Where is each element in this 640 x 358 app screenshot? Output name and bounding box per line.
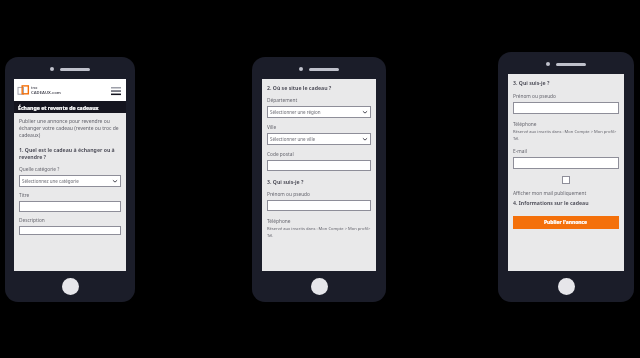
staticText: troc xyxy=(31,86,38,90)
button[interactable]: Home xyxy=(62,278,79,295)
staticText: CADEAUX.com xyxy=(31,90,61,96)
staticText: Prénom ou pseudo xyxy=(513,93,556,100)
button[interactable] xyxy=(267,200,371,211)
staticText: Titre xyxy=(19,192,30,199)
staticText: Sélectionnez une catégorie xyxy=(22,178,79,184)
staticText: 3. Qui suis-je ? xyxy=(267,178,304,185)
staticText: 4. Informations sur le cadeau xyxy=(513,199,589,206)
staticText: Réservé aux inscrits dans : Mon Compte >… xyxy=(267,226,371,238)
button[interactable]: Sélectionner une région xyxy=(267,106,371,118)
button[interactable]: Sélectionner une ville xyxy=(267,133,371,145)
staticText: Échange et revente de cadeaux xyxy=(18,104,99,111)
staticText: Description xyxy=(19,217,45,224)
staticText: 1. Quel est le cadeau à échanger ou à re… xyxy=(19,146,121,160)
button[interactable]: troc xyxy=(18,85,61,96)
staticText: E-mail xyxy=(513,148,527,155)
button[interactable]: Menu xyxy=(109,84,122,97)
button[interactable] xyxy=(19,226,121,235)
button[interactable]: Home xyxy=(558,278,575,295)
staticText: Publier l'annonce xyxy=(544,219,588,226)
staticText: Afficher mon mail publiquement xyxy=(513,190,587,197)
staticText: Prénom ou pseudo xyxy=(267,191,310,198)
staticText: Téléphone xyxy=(513,121,537,128)
staticText: Téléphone xyxy=(267,218,291,225)
button[interactable] xyxy=(19,201,121,212)
button[interactable] xyxy=(513,157,619,169)
staticText: Code postal xyxy=(267,151,294,158)
staticText: Département xyxy=(267,97,298,104)
staticText: Réservé aux inscrits dans : Mon Compte >… xyxy=(513,129,619,141)
staticText: Ville xyxy=(267,124,277,131)
button[interactable]: Home xyxy=(311,278,328,295)
staticText: Sélectionner une région xyxy=(270,109,321,115)
staticText: 2. Où se situe le cadeau ? xyxy=(267,84,332,91)
staticText: 3. Qui suis-je ? xyxy=(513,79,550,86)
button[interactable]: Sélectionnez une catégorie xyxy=(19,175,121,187)
staticText: Publier une annonce pour revendre ou éch… xyxy=(19,118,121,139)
staticText: Sélectionner une ville xyxy=(270,136,316,142)
button[interactable]: Afficher mon mail publiquement xyxy=(562,176,570,184)
button[interactable] xyxy=(513,102,619,114)
staticText: Quelle catégorie ? xyxy=(19,166,60,173)
button[interactable]: Publier l'annonce xyxy=(513,216,619,229)
button[interactable] xyxy=(267,160,371,171)
